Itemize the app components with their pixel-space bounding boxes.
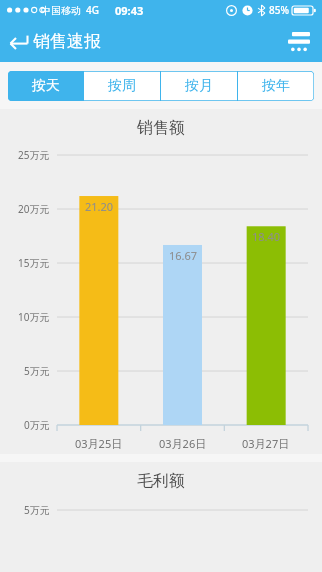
button[interactable]: 按天 <box>8 71 83 101</box>
staticText: 10万元 <box>18 310 50 324</box>
button[interactable]: 按年 <box>238 71 314 101</box>
staticText: 0万元 <box>24 418 50 432</box>
staticText: 4G <box>86 3 99 17</box>
staticText: 按年 <box>262 77 290 95</box>
staticText: 03月25日 <box>75 436 123 451</box>
button[interactable]: Menu <box>276 23 322 60</box>
staticText: 销售额 <box>137 118 185 138</box>
staticText: 按月 <box>185 77 213 95</box>
staticText: 03月27日 <box>242 436 290 451</box>
staticText: 按天 <box>32 77 60 95</box>
staticText: 03月26日 <box>159 436 207 451</box>
staticText: 5万元 <box>24 364 50 378</box>
staticText: 5万元 <box>24 503 50 517</box>
staticText: 15万元 <box>18 256 50 270</box>
staticText: 16.67 <box>169 248 198 262</box>
staticText: 85% <box>269 3 289 17</box>
staticText: 按周 <box>108 77 136 95</box>
staticText: 20万元 <box>18 202 50 216</box>
staticText: 09:43 <box>115 3 144 18</box>
button[interactable]: 按周 <box>84 71 160 101</box>
button[interactable]: 按月 <box>161 71 237 101</box>
staticText: 毛利额 <box>137 471 185 491</box>
button[interactable]: Back <box>0 25 109 58</box>
staticText: 18.40 <box>252 229 281 243</box>
staticText: 21.20 <box>85 199 114 213</box>
staticText: 中国移动 <box>41 4 81 17</box>
staticText: 销售速报 <box>33 31 101 52</box>
staticText: 25万元 <box>18 148 50 162</box>
